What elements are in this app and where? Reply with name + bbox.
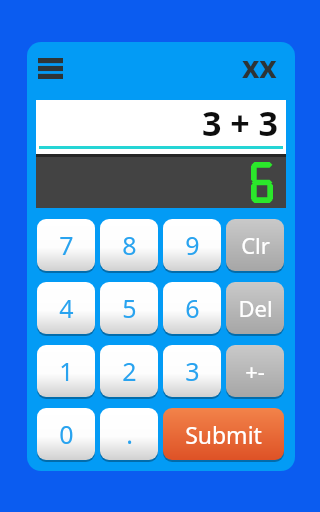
staticText: Clr [241, 230, 270, 260]
button[interactable]: 4 [37, 282, 95, 334]
staticText: . [126, 417, 133, 451]
button[interactable]: 1 [37, 345, 95, 397]
button[interactable]: 5 [100, 282, 158, 334]
staticText: 0 [59, 417, 74, 451]
staticText: 1 [59, 354, 74, 388]
staticText: 4 [59, 291, 74, 325]
button[interactable]: Del [226, 282, 284, 334]
button[interactable]: 7 [37, 219, 95, 271]
staticText: 3 [185, 354, 200, 388]
button[interactable]: 6 [163, 282, 221, 334]
button[interactable]: Submit [163, 408, 284, 460]
button[interactable]: 8 [100, 219, 158, 271]
button[interactable]: 2 [100, 345, 158, 397]
staticText: +- [245, 356, 265, 386]
staticText: 3 + 3 [202, 100, 279, 146]
staticText: 8 [122, 228, 137, 262]
button[interactable]: 9 [163, 219, 221, 271]
staticText: Submit [185, 419, 262, 450]
staticText: 2 [122, 354, 137, 388]
button[interactable]: Close [231, 46, 287, 86]
staticText: 5 [122, 291, 137, 325]
button[interactable]: 3 [163, 345, 221, 397]
button[interactable]: Menu [36, 54, 64, 82]
button[interactable]: . [100, 408, 158, 460]
staticText: Del [238, 293, 273, 323]
button[interactable]: 3 + 3 [36, 100, 286, 154]
staticText: xx [242, 46, 277, 86]
button[interactable]: 0 [37, 408, 95, 460]
staticText: 6 [185, 291, 200, 325]
button[interactable]: +- [226, 345, 284, 397]
staticText: 7 [59, 228, 74, 262]
staticText: 9 [185, 228, 200, 262]
button[interactable]: Clr [226, 219, 284, 271]
